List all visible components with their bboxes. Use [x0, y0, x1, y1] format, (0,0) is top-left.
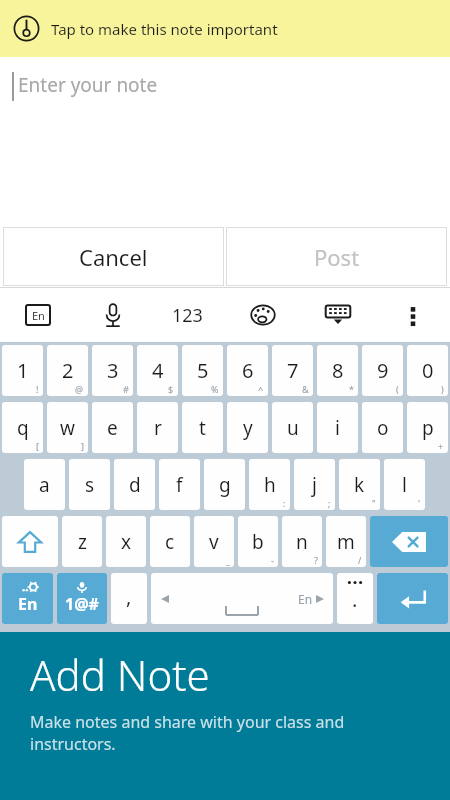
- button[interactable]: i: [317, 402, 358, 453]
- staticText: ?: [314, 554, 318, 566]
- staticText: &: [302, 383, 309, 395]
- button[interactable]: q: [2, 402, 43, 453]
- button[interactable]: Backspace: [370, 516, 448, 567]
- staticText: 5: [197, 357, 209, 384]
- button[interactable]: 6: [227, 345, 268, 396]
- button[interactable]: Shift: [2, 516, 58, 567]
- staticText: 3: [107, 357, 119, 384]
- staticText: k: [354, 472, 365, 498]
- staticText: e: [107, 415, 118, 441]
- staticText: Make notes and share with your class and…: [30, 711, 345, 755]
- button[interactable]: 5: [182, 345, 223, 396]
- button[interactable]: Enter: [377, 573, 448, 624]
- button[interactable]: Post: [226, 227, 447, 286]
- staticText: a: [39, 472, 50, 498]
- staticText: i: [335, 415, 340, 441]
- button[interactable]: Cancel: [3, 227, 224, 286]
- button[interactable]: t: [182, 402, 223, 453]
- button[interactable]: b: [238, 516, 278, 567]
- staticText: Add Note: [30, 646, 210, 703]
- button[interactable]: h: [249, 459, 290, 510]
- staticText: r: [154, 415, 162, 441]
- staticText: o: [377, 415, 389, 441]
- button[interactable]: Voice input: [75, 288, 150, 342]
- staticText: u: [287, 415, 299, 441]
- staticText: n: [296, 529, 308, 555]
- button[interactable]: m: [326, 516, 366, 567]
- staticText: m: [337, 529, 355, 555]
- staticText: %: [211, 383, 219, 395]
- staticText: :: [283, 497, 286, 509]
- staticText: q: [17, 415, 29, 441]
- staticText: 4: [152, 357, 164, 384]
- button[interactable]: Space: [151, 573, 333, 624]
- staticText: Post: [314, 242, 360, 272]
- staticText: l: [402, 472, 407, 498]
- button[interactable]: 4: [137, 345, 178, 396]
- button[interactable]: g: [204, 459, 245, 510]
- button[interactable]: ,: [111, 573, 147, 624]
- button[interactable]: 3: [92, 345, 133, 396]
- staticText: Cancel: [79, 242, 148, 272]
- staticText: *: [349, 383, 354, 395]
- staticText: 1: [17, 357, 29, 384]
- staticText: Enter your note: [18, 72, 158, 98]
- button[interactable]: o: [362, 402, 403, 453]
- button[interactable]: Enter your note: [0, 57, 450, 226]
- button[interactable]: p: [407, 402, 448, 453]
- button[interactable]: 2: [47, 345, 88, 396]
- button[interactable]: y: [227, 402, 268, 453]
- button[interactable]: v: [194, 516, 234, 567]
- button[interactable]: e: [92, 402, 133, 453]
- staticText: #: [123, 383, 129, 395]
- button[interactable]: j: [294, 459, 335, 510]
- staticText: @: [75, 383, 84, 395]
- button[interactable]: z: [62, 516, 102, 567]
- button[interactable]: .: [337, 573, 373, 624]
- button[interactable]: s: [69, 459, 110, 510]
- button[interactable]: Language: [0, 288, 75, 342]
- button[interactable]: 9: [362, 345, 403, 396]
- button[interactable]: u: [272, 402, 313, 453]
- button[interactable]: 8: [317, 345, 358, 396]
- staticText: !: [36, 383, 39, 395]
- button[interactable]: Theme: [225, 288, 300, 342]
- button[interactable]: 1: [2, 345, 43, 396]
- button[interactable]: 7: [272, 345, 313, 396]
- button[interactable]: r: [137, 402, 178, 453]
- button[interactable]: k: [339, 459, 380, 510]
- staticText: 6: [242, 357, 254, 384]
- button[interactable]: 0: [407, 345, 448, 396]
- staticText: +: [438, 440, 444, 452]
- staticText: Tap to make this note important: [51, 19, 278, 39]
- button[interactable]: w: [47, 402, 88, 453]
- button[interactable]: f: [159, 459, 200, 510]
- button[interactable]: c: [150, 516, 190, 567]
- button[interactable]: Symbols: [57, 573, 107, 624]
- staticText: [: [36, 440, 39, 452]
- button[interactable]: l: [384, 459, 425, 510]
- button[interactable]: n: [282, 516, 322, 567]
- staticText: 8: [332, 357, 344, 384]
- staticText: -: [271, 554, 274, 566]
- button[interactable]: x: [106, 516, 146, 567]
- staticText: c: [165, 529, 175, 555]
- button[interactable]: 123: [150, 288, 225, 342]
- button[interactable]: More options: [375, 288, 450, 342]
- staticText: 1@#: [65, 593, 99, 615]
- staticText: s: [85, 472, 95, 498]
- staticText: ': [418, 497, 421, 509]
- staticText: ): [441, 383, 444, 395]
- staticText: En: [32, 308, 45, 323]
- staticText: ;: [328, 497, 331, 509]
- staticText: ]: [81, 440, 84, 452]
- staticText: En: [18, 593, 38, 615]
- button[interactable]: Tap to make this note important: [0, 0, 450, 57]
- staticText: ^: [258, 383, 264, 395]
- staticText: p: [422, 415, 434, 441]
- button[interactable]: a: [24, 459, 65, 510]
- button[interactable]: d: [114, 459, 155, 510]
- staticText: En: [298, 591, 313, 607]
- button[interactable]: Change language: [2, 573, 53, 624]
- button[interactable]: Hide keyboard: [300, 288, 375, 342]
